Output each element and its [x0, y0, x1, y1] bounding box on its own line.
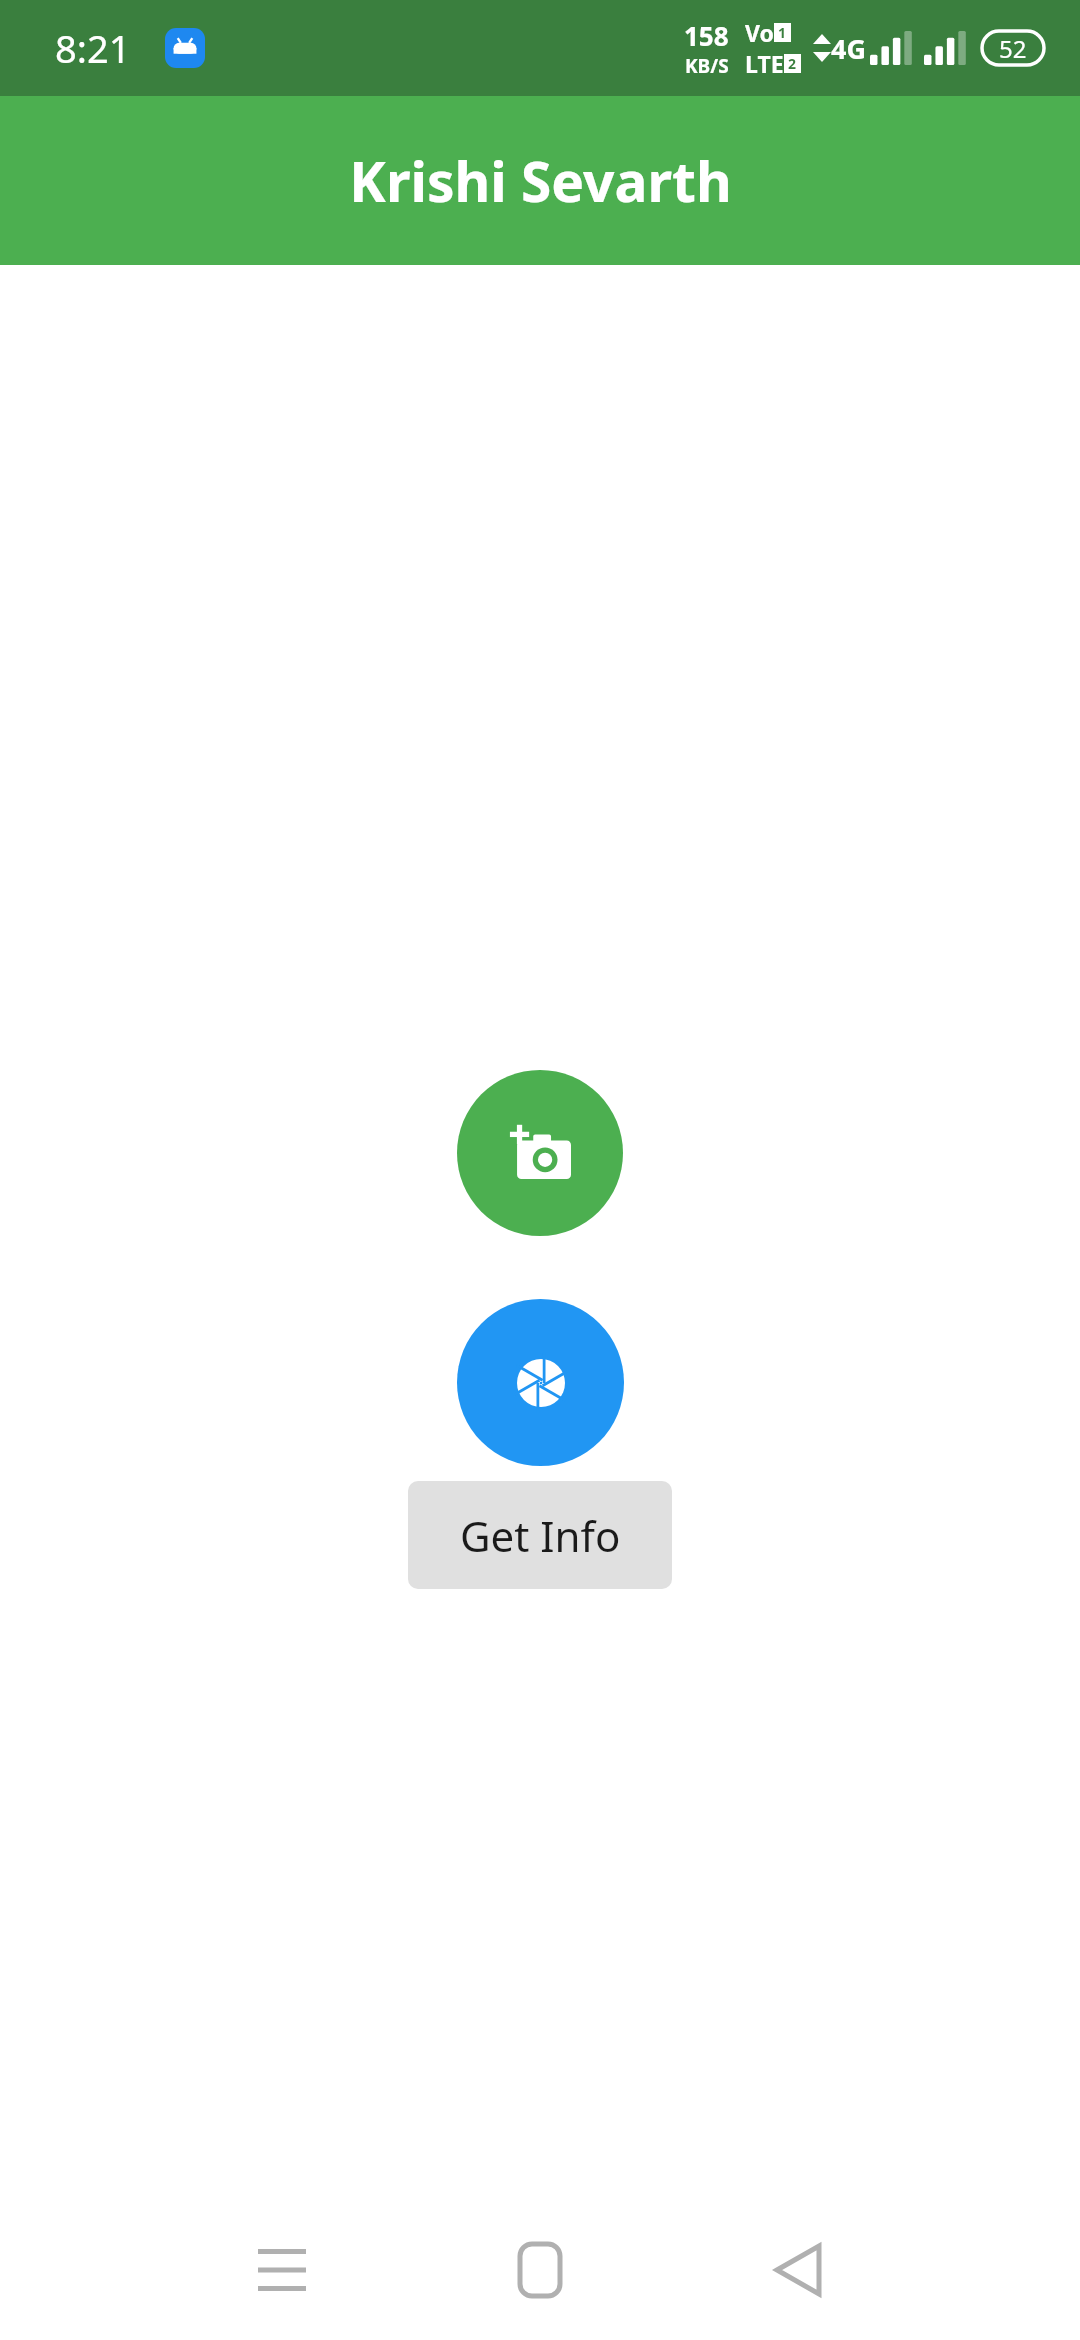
staticText: LTE: [745, 48, 784, 79]
staticText: 158: [684, 18, 729, 53]
staticText: KB/S: [685, 53, 729, 79]
staticText: 4G: [831, 30, 866, 67]
button[interactable]: Add photo: [457, 1070, 623, 1236]
staticText: 52: [999, 32, 1027, 65]
staticText: 1: [778, 23, 787, 42]
button[interactable]: Capture: [457, 1299, 624, 1466]
staticText: 8:21: [55, 22, 131, 74]
staticText: 2: [788, 54, 797, 73]
staticText: Vo: [745, 17, 774, 48]
button[interactable]: Recents: [222, 2210, 342, 2330]
button[interactable]: Get Info: [408, 1481, 672, 1589]
staticText: Krishi Sevarth: [349, 143, 732, 218]
button[interactable]: Home: [480, 2210, 600, 2330]
staticText: Get Info: [460, 1507, 621, 1564]
button[interactable]: Back: [738, 2210, 858, 2330]
